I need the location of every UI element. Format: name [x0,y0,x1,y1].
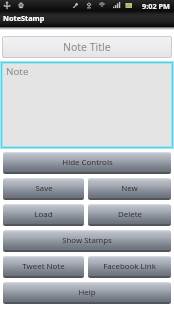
staticText: New [121,183,138,194]
staticText: Load [34,209,53,220]
button[interactable]: Save [3,178,84,200]
button[interactable]: Note [0,61,174,149]
staticText: Help [78,287,96,298]
staticText: Note [6,65,29,78]
staticText: NoteStamp [3,13,45,23]
button[interactable]: New [88,178,171,200]
button[interactable]: Show Stamps [3,230,171,252]
staticText: Tweet Note [22,261,65,272]
staticText: Show Stamps [62,235,112,246]
button[interactable]: Facebook Link [88,256,171,278]
button[interactable]: Help [3,282,171,304]
staticText: Save [35,183,53,194]
button[interactable]: Note Title [2,36,172,58]
staticText: 9:02 PM [142,1,170,11]
staticText: Note Title [63,40,111,54]
button[interactable]: Load [3,204,84,226]
button[interactable]: Delete [88,204,171,226]
staticText: Facebook Link [103,261,156,272]
button[interactable]: Tweet Note [3,256,84,278]
staticText: Hide Controls [62,157,113,168]
button[interactable]: Hide Controls [3,152,171,174]
staticText: Delete [118,209,142,220]
